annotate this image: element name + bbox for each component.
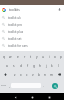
button[interactable]: d bbox=[17, 61, 24, 70]
staticText: p bbox=[60, 55, 62, 59]
button[interactable]: z bbox=[11, 70, 18, 79]
staticText: b bbox=[38, 73, 40, 77]
button[interactable]: toolkit set bbox=[0, 35, 64, 42]
staticText: s bbox=[13, 64, 15, 68]
staticText: a bbox=[6, 64, 8, 68]
button[interactable]: h bbox=[37, 61, 43, 70]
button[interactable]: e bbox=[14, 52, 21, 61]
button[interactable]: Home bbox=[29, 94, 36, 100]
button[interactable]: toolkits bbox=[0, 5, 64, 14]
button[interactable]: n bbox=[42, 70, 48, 79]
button[interactable]: Voice search bbox=[57, 7, 62, 12]
button[interactable]: y bbox=[34, 52, 40, 61]
button[interactable]: x bbox=[18, 70, 24, 79]
staticText: m bbox=[50, 73, 53, 77]
button[interactable]: Comma bbox=[7, 79, 11, 92]
button[interactable]: b bbox=[36, 70, 42, 79]
button[interactable]: Shift bbox=[0, 70, 11, 79]
staticText: g bbox=[33, 64, 35, 68]
button[interactable]: m bbox=[48, 70, 54, 79]
button[interactable]: s bbox=[10, 61, 17, 70]
button[interactable]: p bbox=[58, 52, 64, 61]
staticText: ?123 bbox=[1, 84, 6, 87]
button[interactable]: r bbox=[21, 52, 28, 61]
staticText: j bbox=[46, 64, 47, 68]
staticText: f bbox=[27, 64, 29, 68]
button[interactable]: o bbox=[52, 52, 58, 61]
button[interactable]: q bbox=[0, 52, 7, 61]
staticText: r bbox=[24, 55, 26, 59]
staticText: x bbox=[20, 73, 22, 77]
button[interactable]: Recent apps bbox=[46, 94, 53, 100]
staticText: t bbox=[30, 55, 32, 59]
staticText: d bbox=[20, 64, 22, 68]
staticText: k bbox=[51, 64, 53, 68]
staticText: toolkit pro bbox=[8, 23, 23, 27]
staticText: l bbox=[58, 64, 59, 68]
button[interactable]: l bbox=[55, 61, 61, 70]
staticText: , bbox=[9, 84, 10, 88]
staticText: n bbox=[44, 73, 46, 77]
button[interactable]: toolkit plus bbox=[0, 28, 64, 35]
button[interactable]: f bbox=[24, 61, 31, 70]
staticText: c bbox=[26, 73, 28, 77]
staticText: q bbox=[3, 55, 5, 59]
staticText: toolkit plus bbox=[8, 30, 24, 34]
staticText: e bbox=[17, 55, 19, 59]
button[interactable]: c bbox=[24, 70, 30, 79]
staticText: u bbox=[42, 55, 44, 59]
button[interactable]: toolkit for cars bbox=[0, 42, 64, 49]
button[interactable]: toolkit uk bbox=[0, 14, 64, 21]
staticText: w bbox=[9, 55, 12, 59]
staticText: toolkit for cars bbox=[8, 44, 28, 48]
staticText: i bbox=[49, 55, 50, 59]
button[interactable]: t bbox=[28, 52, 34, 61]
staticText: . bbox=[43, 84, 44, 88]
button[interactable]: Symbols bbox=[0, 79, 7, 92]
staticText: y bbox=[36, 55, 38, 59]
staticText: h bbox=[39, 64, 41, 68]
staticText: toolkits bbox=[9, 8, 20, 12]
button[interactable]: toolkit pro bbox=[0, 21, 64, 28]
button[interactable]: u bbox=[40, 52, 46, 61]
button[interactable]: Back bbox=[12, 94, 19, 100]
button[interactable]: i bbox=[46, 52, 52, 61]
button[interactable]: j bbox=[43, 61, 49, 70]
staticText: toolkit uk bbox=[8, 16, 21, 20]
button[interactable]: v bbox=[30, 70, 36, 79]
button[interactable]: Search bbox=[52, 83, 58, 89]
button[interactable]: k bbox=[49, 61, 55, 70]
staticText: z bbox=[14, 73, 16, 77]
button[interactable]: g bbox=[31, 61, 37, 70]
staticText: o bbox=[54, 55, 56, 59]
button[interactable]: Backspace bbox=[54, 70, 64, 79]
button[interactable]: a bbox=[3, 61, 10, 70]
staticText: v bbox=[32, 73, 34, 77]
staticText: toolkit set bbox=[8, 37, 22, 41]
button[interactable]: w bbox=[7, 52, 14, 61]
